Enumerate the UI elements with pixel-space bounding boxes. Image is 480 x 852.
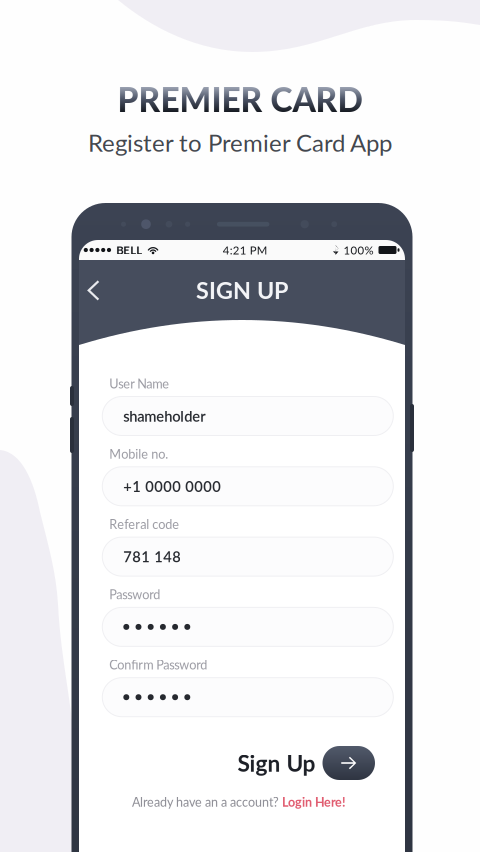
staticText: 781 148 (123, 548, 181, 565)
button[interactable]: Sign Up (215, 744, 375, 782)
button[interactable]: shameholder (102, 396, 393, 435)
button[interactable] (102, 678, 393, 717)
staticText: 4:21 PM (223, 243, 268, 257)
button[interactable]: +1 0000 0000 (102, 467, 393, 506)
button[interactable]: Already have an a account? (119, 792, 359, 812)
button[interactable]: 781 148 (102, 537, 393, 576)
staticText: Sign Up (237, 749, 315, 777)
staticText: shameholder (123, 407, 205, 425)
button[interactable]: Back (79, 269, 113, 312)
staticText: SIGN UP (196, 276, 288, 304)
button[interactable] (102, 607, 393, 646)
staticText: +1 0000 0000 (123, 477, 221, 495)
staticText: Login Here! (282, 794, 346, 809)
staticText: Password (109, 587, 160, 602)
staticText: Referal code (109, 516, 179, 532)
staticText: Confirm Password (109, 657, 207, 672)
staticText: Mobile no. (109, 446, 168, 461)
staticText: BELL (116, 243, 142, 257)
staticText: Register to Premier Card App (88, 128, 392, 157)
staticText: User Name (109, 376, 169, 391)
staticText: 100% (343, 243, 373, 257)
staticText: Already have an a account? (132, 794, 282, 809)
